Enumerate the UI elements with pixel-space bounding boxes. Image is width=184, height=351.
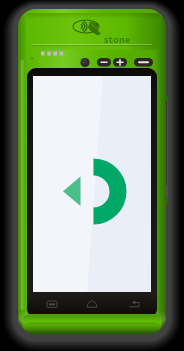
button[interactable]: Back [122, 297, 147, 311]
button[interactable]: Home [80, 297, 105, 311]
button[interactable]: Recent apps [40, 297, 65, 311]
button[interactable]: Volume down [97, 57, 111, 66]
staticText: stone [104, 33, 131, 45]
button[interactable]: Power [134, 57, 153, 66]
button[interactable]: Volume up [113, 57, 127, 66]
button[interactable]: Stone logo [33, 76, 151, 292]
